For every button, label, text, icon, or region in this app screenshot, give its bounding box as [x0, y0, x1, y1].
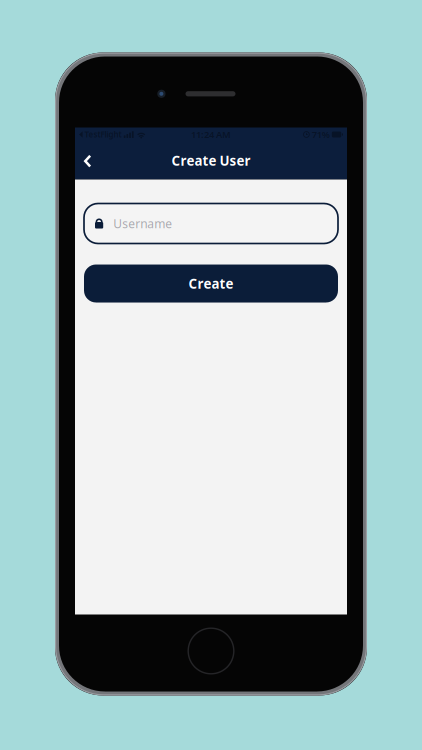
staticText: TestFlight [84, 129, 121, 140]
staticText: 71% [312, 128, 330, 141]
button[interactable]: Username [84, 203, 338, 243]
button[interactable]: Back [75, 143, 105, 177]
button[interactable]: Create [84, 264, 338, 302]
staticText: 11:24 AM [191, 128, 231, 141]
staticText: Create User [171, 152, 250, 169]
staticText: Create [188, 275, 233, 292]
staticText: Username [113, 215, 172, 231]
